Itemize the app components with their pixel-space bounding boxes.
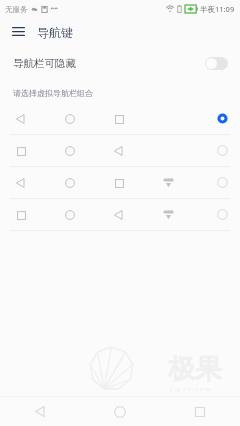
- staticText: 无服务: [5, 5, 28, 14]
- staticText: 导航键: [37, 25, 73, 40]
- button[interactable]: [0, 167, 240, 199]
- staticText: 极果: [168, 352, 222, 386]
- button[interactable]: [0, 135, 240, 167]
- staticText: 导航栏可隐藏: [13, 57, 76, 70]
- staticText: 请选择虚拟导航栏组合: [13, 88, 93, 98]
- button[interactable]: Recents: [160, 397, 240, 426]
- button[interactable]: Back: [0, 397, 80, 426]
- staticText: 半夜11:09: [200, 4, 235, 14]
- button[interactable]: Home: [80, 397, 160, 426]
- button[interactable]: [0, 103, 240, 135]
- staticText: j i g u o . c o m: [170, 385, 211, 393]
- button[interactable]: Menu: [7, 21, 29, 43]
- button[interactable]: [0, 199, 240, 231]
- button[interactable]: 导航栏可隐藏: [0, 46, 240, 80]
